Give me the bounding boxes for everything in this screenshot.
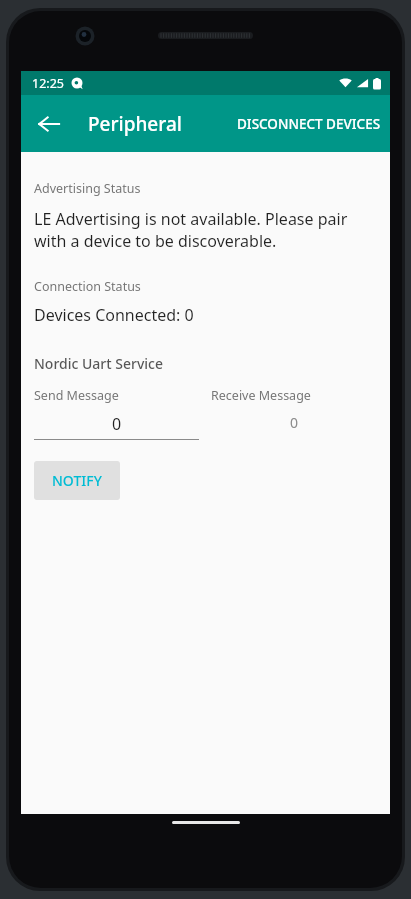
staticText: Nordic Uart Service bbox=[34, 354, 164, 373]
button[interactable]: DISCONNECT DEVICES bbox=[228, 95, 390, 152]
staticText: NOTIFY bbox=[52, 471, 102, 490]
staticText: DISCONNECT DEVICES bbox=[237, 115, 381, 133]
staticText: LE Advertising is not available. Please … bbox=[34, 208, 377, 252]
staticText: 0 bbox=[211, 413, 377, 432]
staticText: Connection Status bbox=[34, 278, 141, 295]
button[interactable]: 0 bbox=[34, 413, 199, 435]
staticText: Peripheral bbox=[88, 111, 182, 137]
staticText: Receive Message bbox=[211, 387, 311, 404]
staticText: 12:25 bbox=[32, 75, 64, 92]
button[interactable]: Back bbox=[29, 104, 69, 144]
staticText: 0 bbox=[34, 413, 199, 435]
button[interactable]: NOTIFY bbox=[34, 461, 120, 500]
staticText: Advertising Status bbox=[34, 180, 141, 197]
staticText: Send Message bbox=[34, 387, 119, 404]
staticText: Devices Connected: 0 bbox=[34, 304, 194, 326]
